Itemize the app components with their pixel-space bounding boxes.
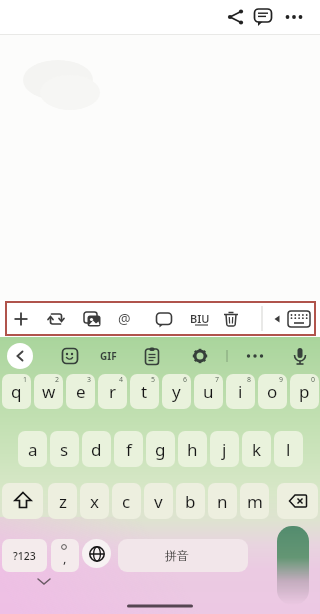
- staticText: 5: [151, 375, 156, 385]
- staticText: 4: [119, 375, 124, 385]
- button[interactable]: BIU: [186, 300, 213, 337]
- staticText: s: [60, 438, 69, 461]
- button[interactable]: [141, 345, 163, 367]
- staticText: 2: [55, 375, 60, 385]
- staticText: e: [76, 380, 86, 403]
- staticText: 0: [311, 375, 316, 385]
- staticText: 7: [215, 375, 220, 385]
- button[interactable]: p: [290, 374, 319, 409]
- button[interactable]: n: [208, 483, 237, 519]
- button[interactable]: o: [258, 374, 287, 409]
- staticText: t: [141, 380, 148, 403]
- staticText: ?123: [13, 549, 36, 563]
- staticText: w: [42, 380, 56, 403]
- button[interactable]: [189, 345, 211, 367]
- button[interactable]: [82, 539, 111, 568]
- button[interactable]: [277, 483, 318, 519]
- button[interactable]: m: [240, 483, 269, 519]
- button[interactable]: @: [113, 300, 135, 337]
- button[interactable]: i: [226, 374, 255, 409]
- button[interactable]: [286, 307, 312, 331]
- staticText: z: [59, 490, 67, 513]
- button[interactable]: GIF: [95, 337, 121, 375]
- staticText: y: [172, 380, 181, 403]
- staticText: 6: [183, 375, 188, 385]
- staticText: 1: [23, 375, 28, 385]
- button[interactable]: r: [98, 374, 127, 409]
- button[interactable]: t: [130, 374, 159, 409]
- button[interactable]: e: [66, 374, 95, 409]
- staticText: x: [90, 490, 99, 513]
- button[interactable]: k: [242, 431, 271, 467]
- button[interactable]: [244, 345, 266, 367]
- button[interactable]: [226, 7, 246, 27]
- staticText: l: [286, 438, 291, 461]
- button[interactable]: x: [80, 483, 109, 519]
- staticText: @: [118, 309, 131, 328]
- staticText: 拼音: [165, 548, 189, 563]
- staticText: f: [126, 438, 132, 461]
- button[interactable]: [284, 7, 304, 27]
- staticText: b: [185, 490, 196, 513]
- button[interactable]: j: [210, 431, 239, 467]
- staticText: r: [109, 380, 117, 403]
- staticText: p: [299, 380, 310, 403]
- staticText: 3: [87, 375, 92, 385]
- staticText: ,: [63, 549, 67, 567]
- button[interactable]: [153, 308, 175, 330]
- staticText: a: [28, 438, 38, 461]
- button[interactable]: [2, 483, 43, 519]
- button[interactable]: a: [18, 431, 47, 467]
- staticText: h: [187, 438, 198, 461]
- button[interactable]: ?123: [2, 539, 47, 572]
- button[interactable]: [270, 311, 284, 327]
- button[interactable]: [289, 345, 311, 367]
- button[interactable]: d: [82, 431, 111, 467]
- button[interactable]: [45, 308, 67, 330]
- staticText: u: [203, 380, 214, 403]
- staticText: i: [238, 380, 243, 403]
- button[interactable]: y: [162, 374, 191, 409]
- staticText: v: [154, 490, 163, 513]
- staticText: q: [11, 380, 22, 403]
- staticText: BIU: [190, 311, 210, 326]
- button[interactable]: l: [274, 431, 303, 467]
- staticText: o: [267, 380, 278, 403]
- button[interactable]: b: [176, 483, 205, 519]
- staticText: d: [91, 438, 102, 461]
- button[interactable]: h: [178, 431, 207, 467]
- button[interactable]: [59, 345, 81, 367]
- staticText: k: [252, 438, 262, 461]
- staticText: c: [122, 490, 131, 513]
- button[interactable]: [7, 343, 33, 369]
- button[interactable]: ,: [51, 539, 79, 572]
- staticText: GIF: [100, 349, 117, 363]
- button[interactable]: [253, 7, 273, 27]
- button[interactable]: v: [144, 483, 173, 519]
- button[interactable]: c: [112, 483, 141, 519]
- button[interactable]: w: [34, 374, 63, 409]
- button[interactable]: [10, 308, 32, 330]
- staticText: 9: [279, 375, 284, 385]
- staticText: 8: [247, 375, 252, 385]
- button[interactable]: s: [50, 431, 79, 467]
- staticText: g: [155, 438, 166, 461]
- button[interactable]: f: [114, 431, 143, 467]
- button[interactable]: z: [48, 483, 77, 519]
- button[interactable]: 拼音: [118, 539, 248, 572]
- button[interactable]: g: [146, 431, 175, 467]
- staticText: j: [222, 438, 227, 461]
- button[interactable]: [81, 308, 103, 330]
- button[interactable]: u: [194, 374, 223, 409]
- button[interactable]: [220, 308, 242, 330]
- button[interactable]: q: [2, 374, 31, 409]
- staticText: m: [247, 490, 263, 513]
- staticText: n: [217, 490, 228, 513]
